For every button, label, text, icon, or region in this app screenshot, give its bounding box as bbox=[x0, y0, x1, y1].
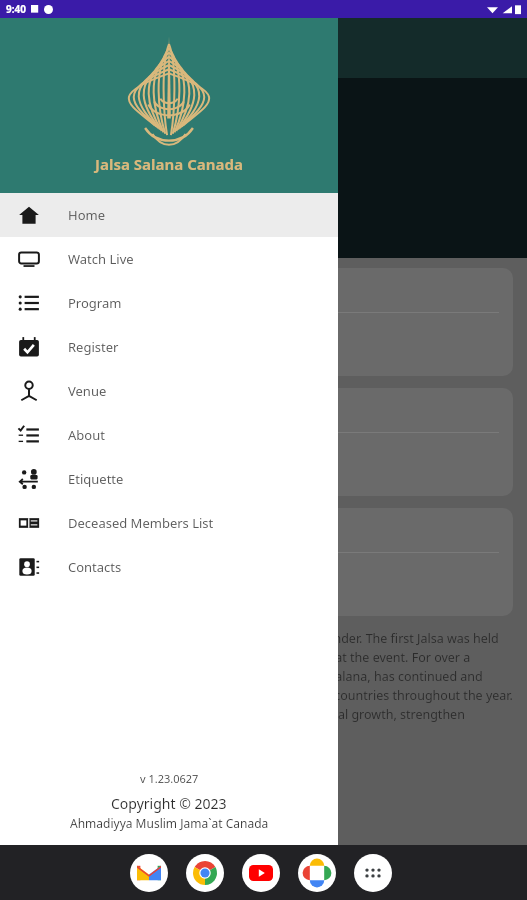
staticText: Home bbox=[68, 206, 105, 224]
staticText: Watch Live bbox=[68, 250, 134, 268]
staticText: Friday July 14 to Sunday July 16, 2023 bbox=[28, 323, 253, 341]
button[interactable]: About bbox=[0, 413, 338, 457]
staticText: July 14 - 16, 2023 bbox=[22, 166, 133, 185]
staticText: Deceased Members List bbox=[68, 514, 214, 532]
staticText: Jalsa Salana 2023 bbox=[22, 92, 240, 129]
button[interactable]: All apps bbox=[354, 854, 392, 892]
staticText: International Centre bbox=[22, 189, 197, 212]
staticText: The International Centre, 6900 Airport R… bbox=[28, 443, 182, 479]
staticText: Program bbox=[68, 294, 122, 312]
button[interactable]: Home bbox=[0, 193, 338, 237]
staticText: Jalsa Salana Canada bbox=[95, 154, 243, 174]
button[interactable]: Gmail bbox=[130, 854, 168, 892]
staticText: Etiquette bbox=[68, 470, 124, 488]
button[interactable]: Etiquette bbox=[0, 457, 338, 501]
button[interactable]: Register bbox=[0, 325, 338, 369]
button[interactable]: Watch Live bbox=[0, 237, 338, 281]
button[interactable]: Program bbox=[0, 281, 338, 325]
button[interactable]: Dates bbox=[14, 268, 513, 376]
staticText: Ahmadiyya Muslim Jama`at Canada bbox=[70, 815, 269, 831]
staticText: The International Centre, Mississauga, O… bbox=[28, 563, 182, 599]
button[interactable]: Venue bbox=[14, 388, 513, 496]
button[interactable]: Chrome bbox=[186, 854, 224, 892]
staticText: Register bbox=[68, 338, 119, 356]
staticText: 9:40 bbox=[6, 2, 26, 16]
staticText: 6900 Airport Rd, Mississauga, ON L4V 1E8 bbox=[22, 212, 238, 227]
button[interactable]: Venue bbox=[0, 369, 338, 413]
staticText: Copyright © 2023 bbox=[111, 794, 227, 813]
button[interactable]: Contacts bbox=[0, 545, 338, 589]
staticText: Contacts bbox=[68, 558, 122, 576]
button[interactable]: Deceased Members List bbox=[0, 501, 338, 545]
staticText: Jalsa Salana is held under the leadershi… bbox=[14, 630, 513, 742]
button[interactable]: Photos bbox=[298, 854, 336, 892]
staticText: Location bbox=[28, 522, 93, 542]
button[interactable]: Location bbox=[14, 508, 513, 616]
staticText: Annual Convention bbox=[22, 129, 238, 162]
staticText: Venue bbox=[68, 382, 107, 400]
staticText: Dates bbox=[28, 282, 71, 302]
button[interactable]: YouTube bbox=[242, 854, 280, 892]
staticText: v 1.23.0627 bbox=[140, 771, 199, 786]
staticText: About bbox=[68, 426, 105, 444]
